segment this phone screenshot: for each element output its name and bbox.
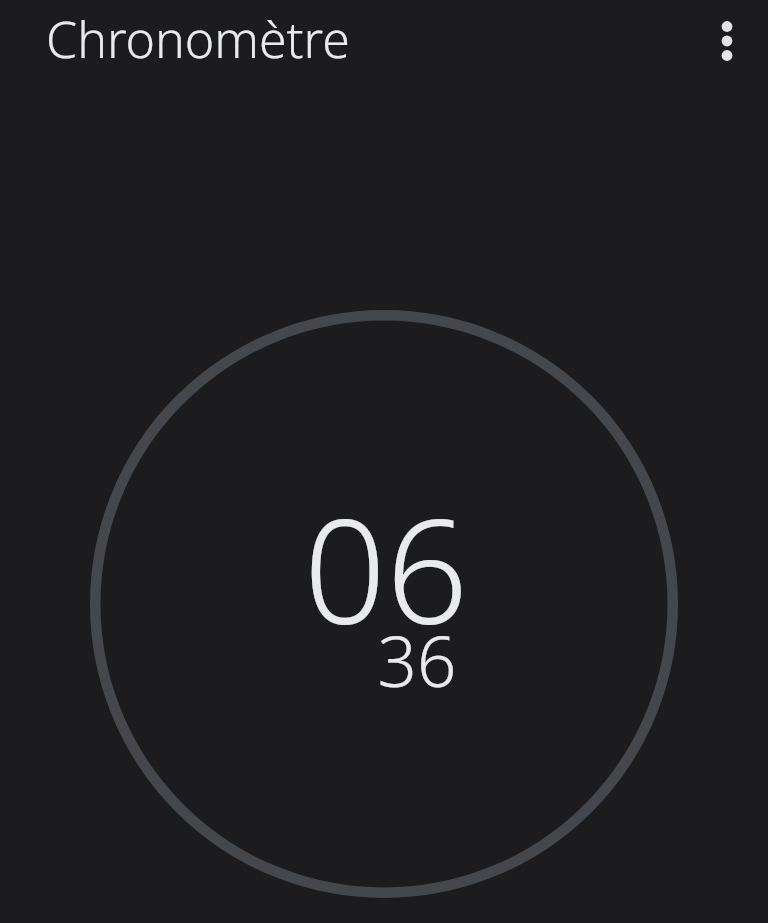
staticText: 06 [231,470,541,666]
staticText: Chronomètre [46,5,350,73]
button[interactable]: More options [703,17,751,65]
staticText: 36 [262,613,572,707]
button[interactable] [84,304,684,904]
